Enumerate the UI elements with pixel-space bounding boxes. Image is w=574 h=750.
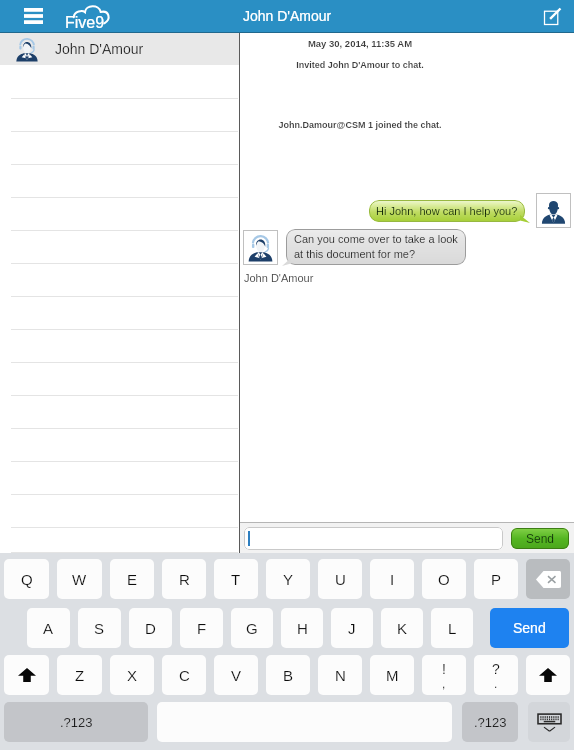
button[interactable]: Y	[266, 559, 310, 599]
staticText: N	[335, 667, 346, 684]
button[interactable]	[0, 429, 239, 462]
staticText: .	[494, 677, 498, 690]
staticText: Five9	[65, 14, 105, 32]
staticText: Send	[513, 620, 546, 636]
button[interactable]	[244, 527, 503, 550]
button[interactable]	[0, 99, 239, 132]
button[interactable]: L	[431, 608, 473, 648]
button[interactable]	[0, 198, 239, 231]
staticText: ?	[492, 661, 500, 677]
staticText: John.Damour@CSM 1 joined the chat.	[240, 120, 480, 130]
staticText: I	[390, 571, 395, 588]
staticText: .?123	[474, 715, 507, 730]
staticText: .?123	[60, 715, 93, 730]
button[interactable]: O	[422, 559, 466, 599]
button[interactable]: G	[231, 608, 273, 648]
staticText: A	[43, 620, 54, 637]
button[interactable]: Z	[57, 655, 102, 695]
button[interactable]	[0, 264, 239, 297]
staticText: Z	[75, 667, 85, 684]
staticText: E	[127, 571, 138, 588]
button[interactable]: .?123	[462, 702, 518, 742]
button[interactable]: N	[318, 655, 362, 695]
button[interactable]	[0, 528, 239, 553]
staticText: G	[246, 620, 258, 637]
staticText: B	[283, 667, 294, 684]
button[interactable]	[0, 132, 239, 165]
button[interactable]: T	[214, 559, 258, 599]
staticText: L	[448, 620, 457, 637]
button[interactable]	[0, 396, 239, 429]
button[interactable]: K	[381, 608, 423, 648]
button[interactable]: S	[78, 608, 121, 648]
staticText: Hi John, how can I help you?	[376, 205, 518, 217]
button[interactable]: Send	[511, 528, 569, 549]
staticText: H	[297, 620, 308, 637]
staticText: Y	[283, 571, 294, 588]
staticText: O	[438, 571, 450, 588]
button[interactable]: X	[110, 655, 154, 695]
staticText: F	[197, 620, 207, 637]
button[interactable]	[0, 462, 239, 495]
button[interactable]: Hide keyboard	[528, 702, 570, 742]
button[interactable]	[0, 231, 239, 264]
staticText: W	[72, 571, 87, 588]
button[interactable]: Send	[490, 608, 569, 648]
button[interactable]	[0, 66, 239, 99]
staticText: S	[94, 620, 105, 637]
staticText: M	[386, 667, 399, 684]
staticText: K	[397, 620, 408, 637]
staticText: John D'Amour	[55, 41, 144, 57]
staticText: John D'Amour	[244, 272, 314, 284]
button[interactable]: E	[110, 559, 154, 599]
button[interactable]: Q	[4, 559, 49, 599]
button[interactable]: R	[162, 559, 206, 599]
staticText: U	[335, 571, 346, 588]
button[interactable]: U	[318, 559, 362, 599]
button[interactable]: D	[129, 608, 172, 648]
button[interactable]: Shift	[4, 655, 49, 695]
staticText: !	[442, 661, 446, 677]
button[interactable]: I	[370, 559, 414, 599]
button[interactable]: Menu	[0, 0, 66, 32]
button[interactable]: F	[180, 608, 223, 648]
button[interactable]	[0, 165, 239, 198]
button[interactable]: P	[474, 559, 518, 599]
button[interactable]	[0, 297, 239, 330]
button[interactable]	[0, 330, 239, 363]
button[interactable]: Backspace	[526, 559, 570, 599]
button[interactable]: M	[370, 655, 414, 695]
staticText: Send	[526, 532, 555, 545]
staticText: ,	[442, 677, 446, 690]
button[interactable]: .?123	[4, 702, 148, 742]
button[interactable]: J	[331, 608, 373, 648]
staticText: Can you come over to take a look at this…	[294, 233, 458, 260]
button[interactable]: H	[281, 608, 323, 648]
staticText: D	[145, 620, 156, 637]
staticText: T	[231, 571, 241, 588]
staticText: May 30, 2014, 11:35 AM	[240, 38, 480, 49]
button[interactable]: Shift	[526, 655, 570, 695]
staticText: P	[491, 571, 502, 588]
button[interactable]: ?	[474, 655, 518, 695]
button[interactable]: V	[214, 655, 258, 695]
staticText: R	[179, 571, 190, 588]
button[interactable]: C	[162, 655, 206, 695]
staticText: C	[179, 667, 190, 684]
staticText: V	[231, 667, 242, 684]
button[interactable]: John D'Amour	[0, 33, 239, 65]
staticText: Q	[21, 571, 33, 588]
staticText: J	[348, 620, 356, 637]
button[interactable]: A	[27, 608, 70, 648]
button[interactable]: B	[266, 655, 310, 695]
button[interactable]	[0, 363, 239, 396]
button[interactable]: W	[57, 559, 102, 599]
staticText: X	[127, 667, 138, 684]
staticText: Invited John D'Amour to chat.	[240, 60, 480, 70]
button[interactable]: !	[422, 655, 466, 695]
button[interactable]	[0, 495, 239, 528]
button[interactable]: Compose message	[530, 0, 574, 32]
staticText: John D'Amour	[243, 8, 332, 24]
